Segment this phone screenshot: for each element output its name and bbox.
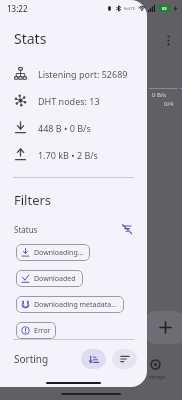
staticText: Downloading metadata… (34, 300, 117, 310)
staticText: 13:22 (7, 3, 28, 14)
button[interactable]: 448 B • 0 B/s (0, 114, 147, 141)
button[interactable]: Settings (149, 358, 182, 388)
staticText: Listening port: 52689 (38, 68, 128, 80)
button[interactable]: Downloading metadata… (16, 296, 124, 313)
staticText: DHT nodes: 13 (38, 95, 100, 107)
button[interactable]: DHT nodes: 13 (0, 87, 147, 114)
staticText: Stats (14, 29, 47, 48)
staticText: 448 B • 0 B/s (38, 122, 91, 134)
staticText: VoLTE (124, 6, 136, 11)
button[interactable]: Error (16, 322, 56, 339)
button[interactable]: More options (158, 30, 178, 50)
button[interactable]: 1.70 kB • 2 B/s (0, 141, 147, 168)
staticText: ttings (149, 373, 166, 381)
button[interactable]: Clear status filter (119, 221, 135, 237)
staticText: 1.70 kB • 2 B/s (38, 149, 98, 161)
staticText: Sorting (14, 352, 49, 366)
staticText: 0 B/s (152, 91, 166, 99)
staticText: Downloaded (34, 274, 76, 284)
button[interactable]: Add torrent (145, 311, 182, 344)
staticText: Status (14, 224, 38, 235)
staticText: 83 (162, 6, 167, 11)
button[interactable]: Sort order (112, 349, 137, 369)
staticText: Error (34, 326, 51, 336)
button[interactable]: Listening port: 52689 (0, 60, 147, 87)
button[interactable]: Downloaded (16, 270, 83, 287)
staticText: 0/4 (164, 100, 174, 108)
button[interactable]: Sort ascending (81, 349, 106, 369)
staticText: Downloading… (34, 248, 84, 258)
staticText: Filters (14, 191, 52, 209)
button[interactable]: Downloading… (16, 244, 90, 261)
